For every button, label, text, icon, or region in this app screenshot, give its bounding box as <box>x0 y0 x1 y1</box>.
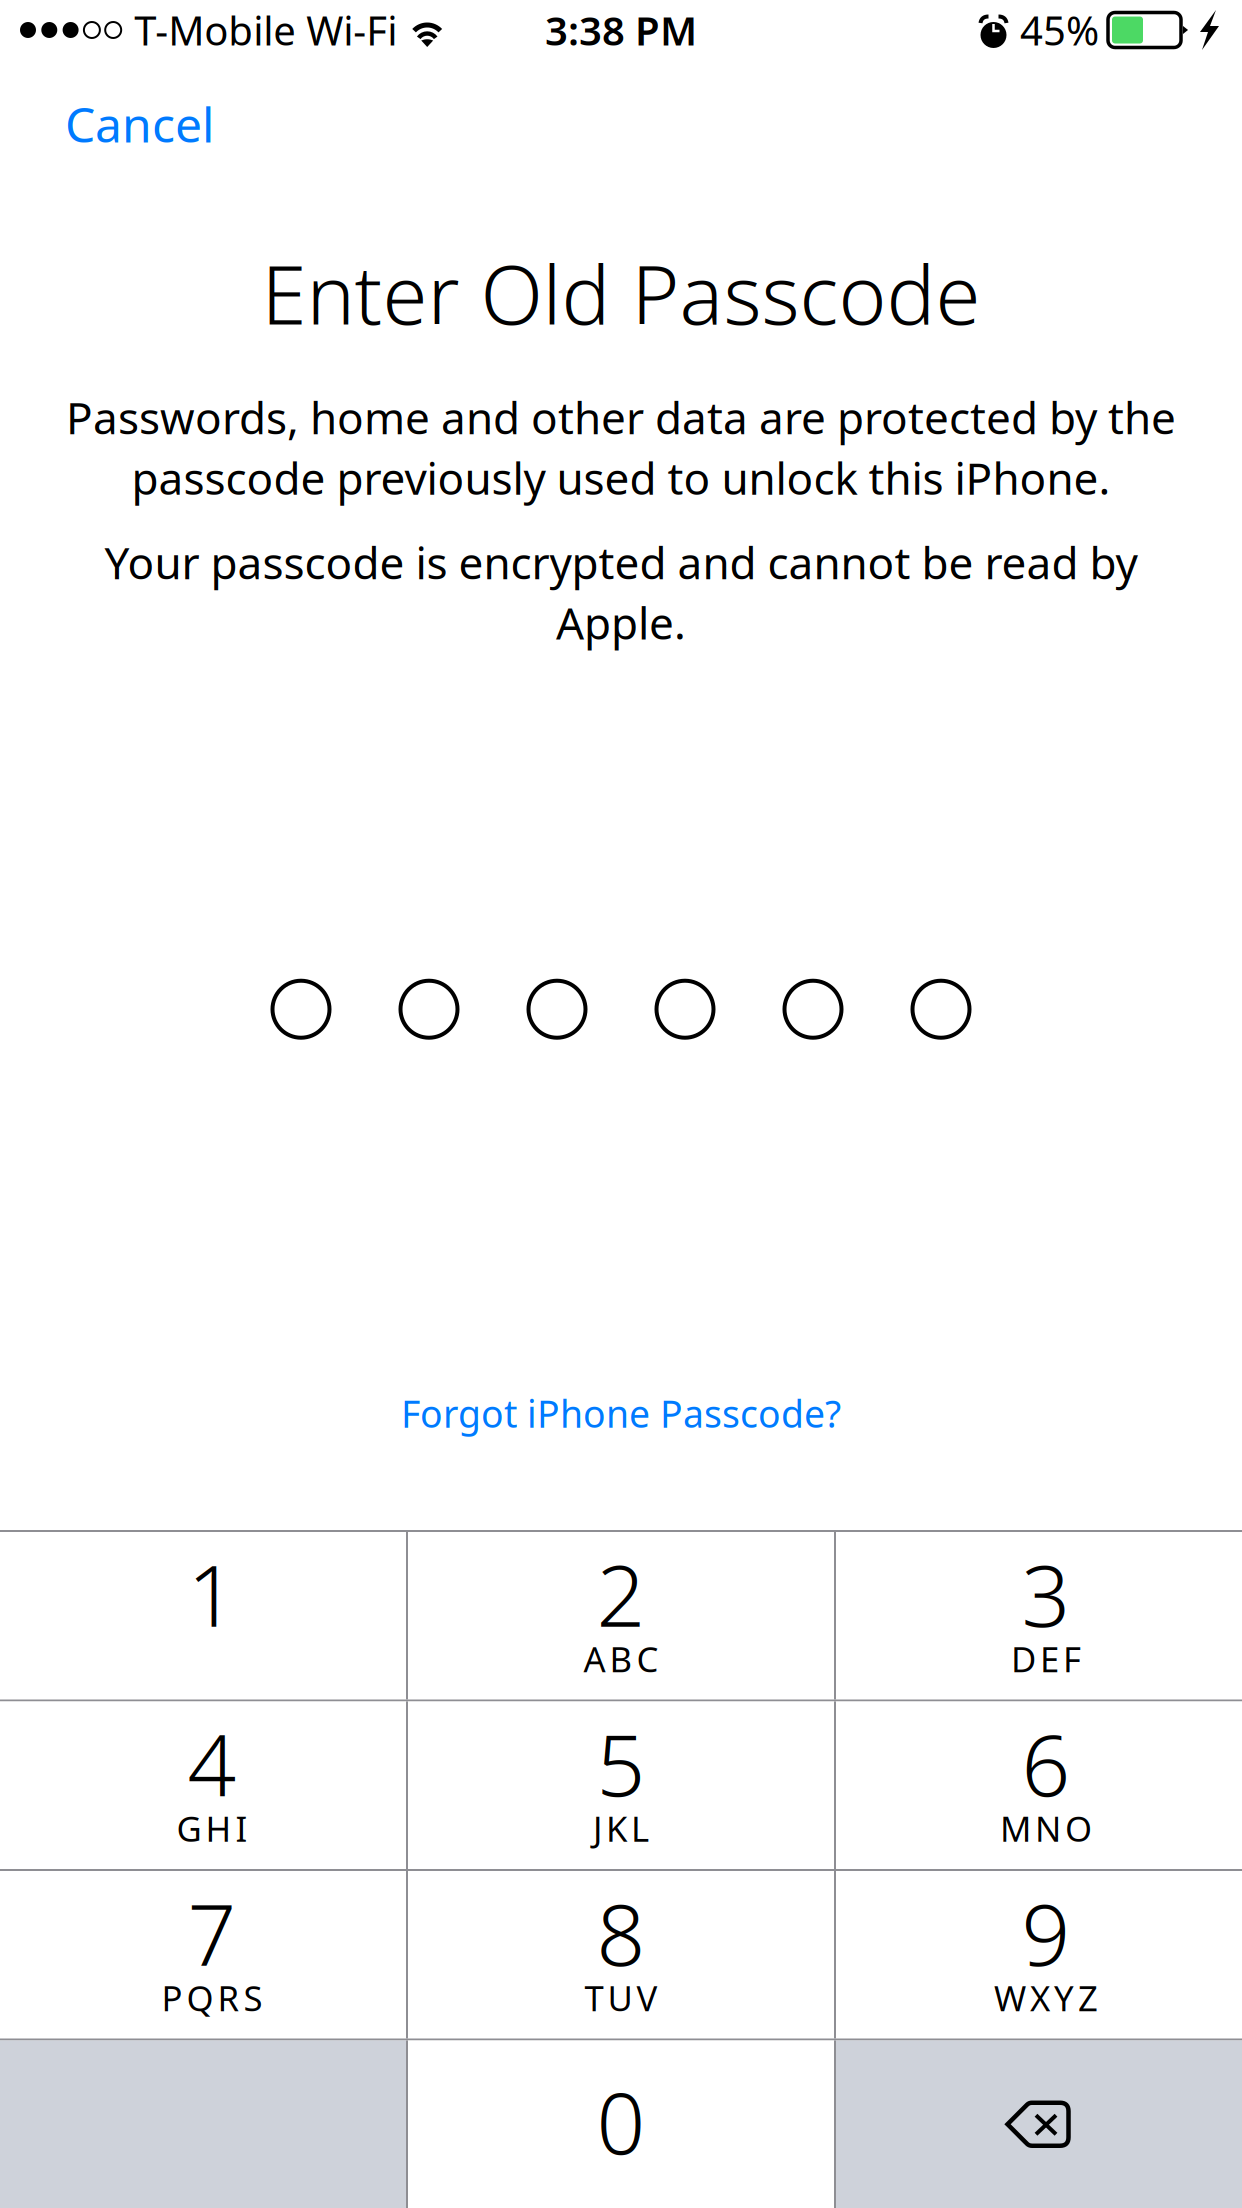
staticText: JKL <box>593 1805 649 1851</box>
button[interactable]: 1 <box>0 1532 406 1699</box>
staticText: TUV <box>584 1975 657 2021</box>
staticText: T-Mobile Wi-Fi <box>134 3 397 56</box>
staticText: 1 <box>187 1537 236 1650</box>
staticText: GHI <box>176 1805 247 1851</box>
button[interactable]: 3 DEF <box>836 1532 1242 1699</box>
staticText: Forgot iPhone Passcode? <box>401 1388 841 1438</box>
staticText: PQRS <box>161 1975 262 2021</box>
staticText: MNO <box>1000 1805 1092 1851</box>
button[interactable]: 0 <box>408 2040 834 2208</box>
staticText: 45% <box>1020 3 1099 56</box>
staticText: passcode previously used to unlock this … <box>131 448 1110 507</box>
button[interactable]: Forgot iPhone Passcode? <box>375 1374 867 1452</box>
staticText: Cancel <box>65 92 214 156</box>
staticText: 3 <box>1021 1537 1070 1650</box>
staticText: 5 <box>596 1707 645 1820</box>
staticText: Enter Old Passcode <box>261 239 980 347</box>
staticText: WXYZ <box>994 1975 1098 2021</box>
button[interactable]: 8 TUV <box>408 1871 834 2038</box>
staticText: DEF <box>1011 1636 1081 1682</box>
staticText: Passwords, home and other data are prote… <box>66 388 1176 446</box>
staticText: 8 <box>596 1876 645 1989</box>
staticText: 4 <box>187 1707 236 1820</box>
button[interactable]: Delete <box>836 2040 1242 2208</box>
staticText: 3:38 PM <box>545 3 697 56</box>
staticText: 7 <box>187 1876 236 1989</box>
staticText: Apple. <box>556 593 686 652</box>
staticText: 0 <box>596 2065 645 2178</box>
button[interactable]: 6 MNO <box>836 1701 1242 1869</box>
button[interactable]: 5 JKL <box>408 1701 834 1869</box>
staticText: 6 <box>1021 1707 1070 1820</box>
button[interactable]: Cancel <box>43 76 236 172</box>
button[interactable]: 7 PQRS <box>0 1871 406 2038</box>
staticText: 2 <box>596 1537 645 1650</box>
button[interactable]: 2 ABC <box>408 1532 834 1699</box>
button[interactable]: 4 GHI <box>0 1701 406 1869</box>
staticText: Your passcode is encrypted and cannot be… <box>104 533 1137 591</box>
staticText: ABC <box>583 1636 658 1682</box>
staticText: 9 <box>1021 1876 1070 1989</box>
button[interactable]: 9 WXYZ <box>836 1871 1242 2038</box>
